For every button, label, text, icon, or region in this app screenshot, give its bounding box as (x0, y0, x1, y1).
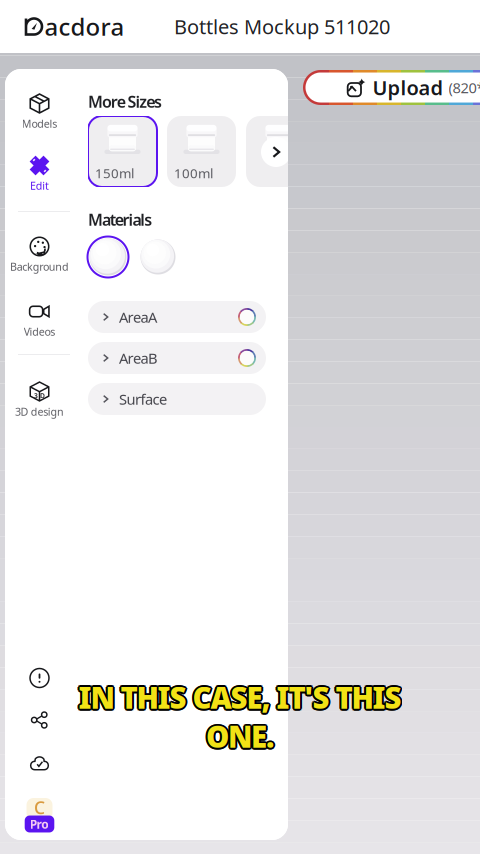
staticText: Background (10, 259, 69, 274)
staticText: ONE. (207, 716, 275, 755)
button[interactable]: acdora (0, 11, 132, 42)
button[interactable]: Matte material (136, 235, 180, 279)
button[interactable]: Pearl material (86, 235, 130, 279)
button[interactable] (246, 116, 315, 187)
button[interactable]: Upload (303, 70, 480, 105)
staticText: ONE. (206, 719, 274, 758)
staticText: ONE. (205, 716, 273, 755)
staticText: (820*136px) (448, 78, 480, 97)
staticText: Models (22, 116, 57, 131)
staticText: IN THIS CASE, IT'S THIS (78, 680, 401, 719)
staticText: Videos (24, 324, 55, 339)
staticText: Surface (119, 389, 167, 409)
button[interactable]: Share (5, 707, 74, 733)
staticText: IN THIS CASE, IT'S THIS (78, 678, 401, 717)
staticText: ONE. (206, 715, 274, 754)
staticText: IN THIS CASE, IT'S THIS (80, 677, 403, 716)
button[interactable]: AreaB (88, 342, 266, 374)
staticText: IN THIS CASE, IT'S THIS (80, 679, 403, 718)
staticText: Materials (88, 209, 152, 230)
staticText: ONE. (204, 717, 272, 756)
staticText: Pro (30, 816, 49, 832)
staticText: AreaA (119, 307, 157, 327)
staticText: ONE. (205, 718, 273, 757)
staticText: ONE. (207, 718, 275, 757)
staticText: 150ml (95, 164, 134, 182)
staticText: IN THIS CASE, IT'S THIS (80, 678, 403, 717)
button[interactable]: Videos (5, 299, 74, 339)
staticText: Edit (30, 178, 49, 193)
button[interactable]: Cloud save (5, 750, 74, 776)
staticText: More Sizes (88, 91, 162, 112)
button[interactable]: Models (5, 91, 74, 131)
staticText: ONE. (208, 717, 276, 756)
button[interactable]: 150ml (88, 116, 157, 187)
button[interactable]: More sizes (260, 136, 292, 168)
staticText: D (40, 391, 45, 400)
staticText: 3 (34, 391, 38, 400)
staticText: acdora (44, 11, 124, 42)
staticText: Upload (372, 74, 443, 101)
button[interactable]: AreaA (88, 301, 266, 333)
staticText: 3D design (15, 404, 64, 419)
button[interactable]: 3 (5, 379, 74, 419)
staticText: IN THIS CASE, IT'S THIS (77, 678, 400, 717)
staticText: AreaB (119, 348, 158, 368)
button[interactable]: Help (5, 665, 74, 691)
staticText: IN THIS CASE, IT'S THIS (77, 677, 400, 716)
button[interactable]: Background (5, 234, 74, 274)
staticText: ONE. (206, 717, 274, 756)
staticText: IN THIS CASE, IT'S THIS (78, 676, 401, 715)
staticText: C (34, 796, 45, 819)
button[interactable]: Pro plan (5, 798, 74, 834)
button[interactable]: Edit (5, 153, 74, 193)
staticText: 100ml (174, 164, 213, 182)
staticText: Bottles Mockup 511020 (174, 13, 390, 40)
staticText: IN THIS CASE, IT'S THIS (77, 679, 400, 718)
button[interactable]: 100ml (167, 116, 236, 187)
button[interactable]: Surface (88, 383, 266, 415)
